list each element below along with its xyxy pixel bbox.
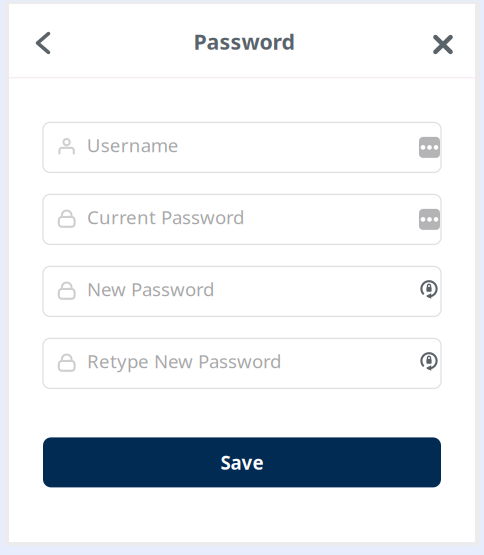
button[interactable]: Close	[421, 14, 465, 66]
staticText: Username	[87, 132, 179, 157]
staticText: Password	[193, 27, 294, 56]
staticText: New Password	[87, 276, 214, 301]
staticText: Save	[220, 450, 263, 475]
staticText: Retype New Password	[87, 348, 281, 373]
button[interactable]: Back	[21, 16, 65, 65]
staticText: Current Password	[87, 204, 244, 229]
button[interactable]: AutoFill	[419, 137, 440, 158]
button[interactable]: Strong password	[418, 351, 440, 375]
button[interactable]: Username	[43, 122, 441, 172]
button[interactable]: Retype New Password	[43, 338, 441, 388]
button[interactable]: Strong password	[418, 279, 440, 303]
button[interactable]: New Password	[43, 266, 441, 316]
button[interactable]: Current Password	[43, 194, 441, 244]
button[interactable]: AutoFill	[419, 209, 440, 230]
button[interactable]: Save	[43, 437, 441, 487]
